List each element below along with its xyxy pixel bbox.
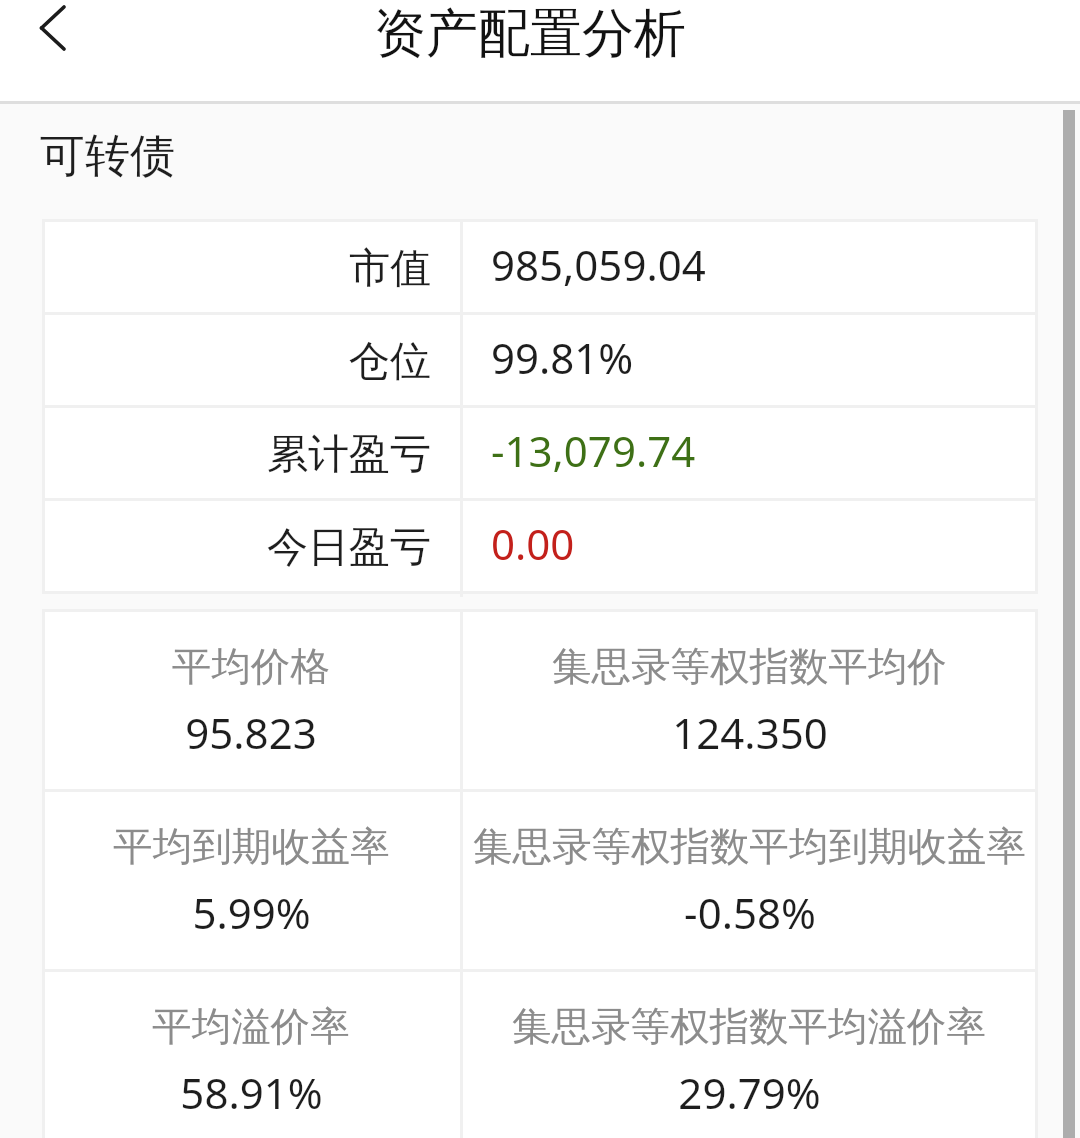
staticText: 集思录等权指数平均到期收益率	[473, 822, 1026, 872]
staticText: 99.81%	[491, 329, 634, 386]
staticText: -13,079.74	[491, 422, 696, 479]
button[interactable]: 平均价格	[42, 612, 460, 792]
staticText: 资产配置分析	[374, 1, 686, 67]
staticText: 市值	[349, 243, 431, 295]
staticText: 仓位	[349, 336, 431, 388]
button[interactable]: 市值	[42, 222, 1038, 315]
staticText: -0.58%	[684, 884, 816, 941]
button[interactable]: 平均溢价率	[42, 972, 460, 1138]
staticText: 985,059.04	[491, 236, 706, 293]
staticText: 集思录等权指数平均价	[552, 642, 947, 692]
staticText: 累计盈亏	[267, 429, 431, 481]
staticText: 5.99%	[192, 884, 311, 941]
staticText: 29.79%	[678, 1064, 821, 1121]
button[interactable]: 累计盈亏	[42, 408, 1038, 501]
button[interactable]: 仓位	[42, 315, 1038, 408]
staticText: 58.91%	[180, 1064, 323, 1121]
button[interactable]: Back	[20, 0, 84, 56]
button[interactable]: 集思录等权指数平均到期收益率	[460, 792, 1038, 972]
button[interactable]: 集思录等权指数平均溢价率	[460, 972, 1038, 1138]
button[interactable]: 平均到期收益率	[42, 792, 460, 972]
staticText: 可转债	[40, 128, 175, 185]
staticText: 0.00	[491, 515, 575, 572]
staticText: 平均溢价率	[152, 1002, 350, 1052]
staticText: 今日盈亏	[267, 522, 431, 574]
staticText: 集思录等权指数平均溢价率	[512, 1002, 986, 1052]
button[interactable]: 集思录等权指数平均价	[460, 612, 1038, 792]
staticText: 平均价格	[172, 642, 330, 692]
staticText: 124.350	[672, 704, 828, 761]
staticText: 平均到期收益率	[113, 822, 390, 872]
button[interactable]: 今日盈亏	[42, 501, 1038, 594]
staticText: 95.823	[185, 704, 317, 761]
